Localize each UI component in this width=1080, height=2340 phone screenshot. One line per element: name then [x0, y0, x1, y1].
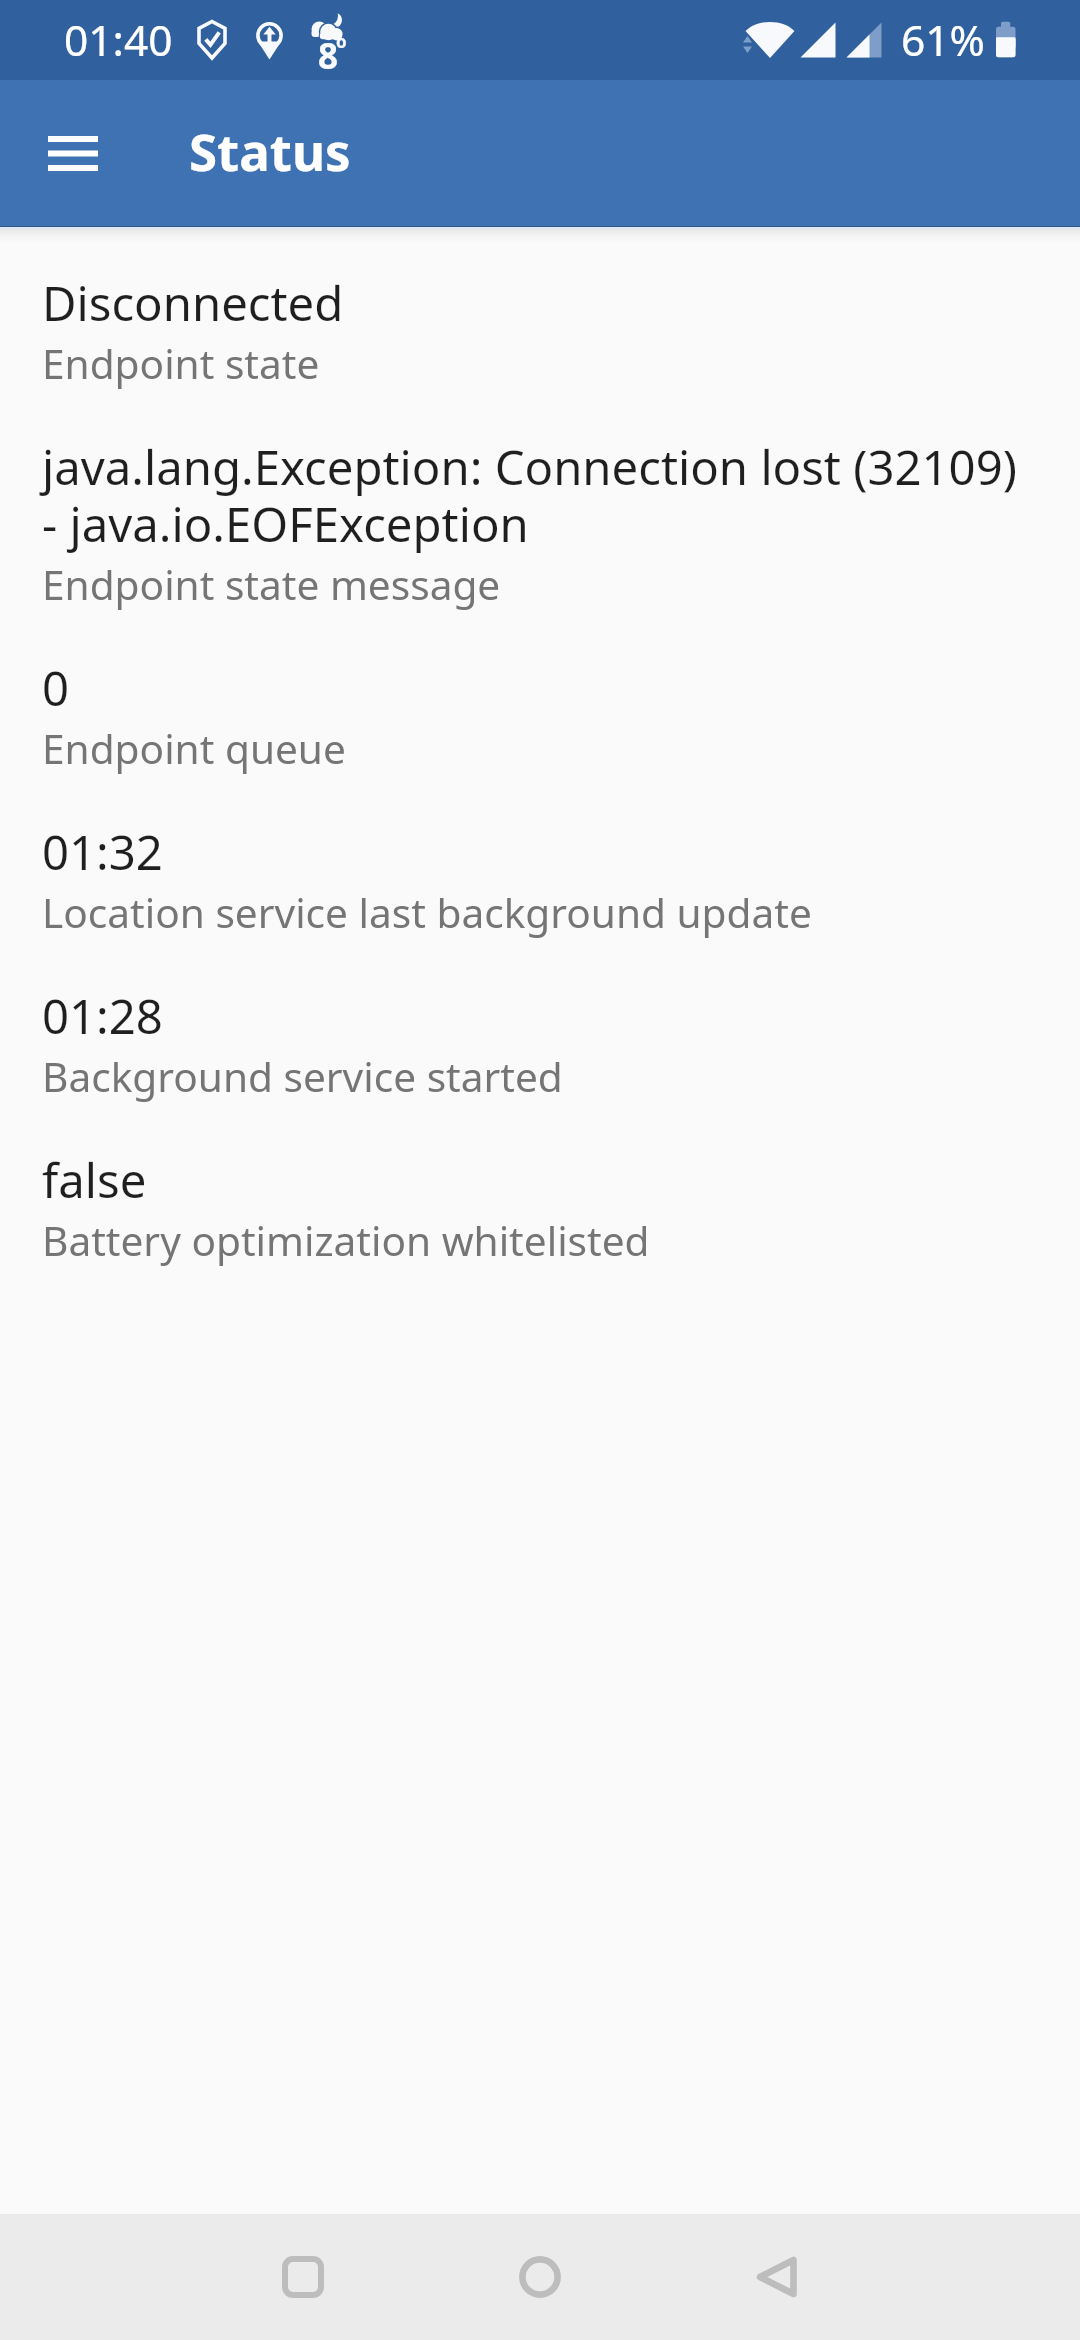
staticText: Endpoint queue — [42, 726, 346, 775]
staticText: false — [42, 1153, 147, 1210]
button[interactable]: false — [0, 1103, 1080, 1267]
staticText: 01:40 — [64, 21, 173, 65]
button[interactable]: java.lang.Exception: Connection lost (32… — [0, 390, 1080, 611]
staticText: 01:32 — [42, 825, 163, 882]
staticText: Status — [189, 127, 351, 183]
staticText: java.lang.Exception: Connection lost (32… — [42, 440, 1034, 554]
staticText: 8 — [318, 32, 339, 80]
button[interactable]: 01:28 — [0, 939, 1080, 1103]
button[interactable]: Open navigation drawer — [25, 106, 121, 200]
button[interactable]: Home — [480, 2217, 600, 2337]
button[interactable]: Disconnected — [0, 226, 1080, 390]
button[interactable]: Recent apps — [243, 2217, 363, 2337]
button[interactable]: 01:32 — [0, 775, 1080, 939]
staticText: Battery optimization whitelisted — [42, 1218, 650, 1267]
staticText: o — [336, 30, 347, 53]
staticText: 01:28 — [42, 989, 163, 1046]
staticText: 61% — [901, 21, 985, 65]
staticText: Endpoint state — [42, 341, 320, 390]
button[interactable]: 0 — [0, 611, 1080, 775]
staticText: Location service last background update — [42, 890, 812, 939]
staticText: Disconnected — [42, 276, 344, 333]
staticText: 0 — [42, 661, 70, 718]
staticText: Background service started — [42, 1054, 563, 1103]
button[interactable]: Back — [717, 2217, 837, 2337]
staticText: Endpoint state message — [42, 562, 501, 611]
